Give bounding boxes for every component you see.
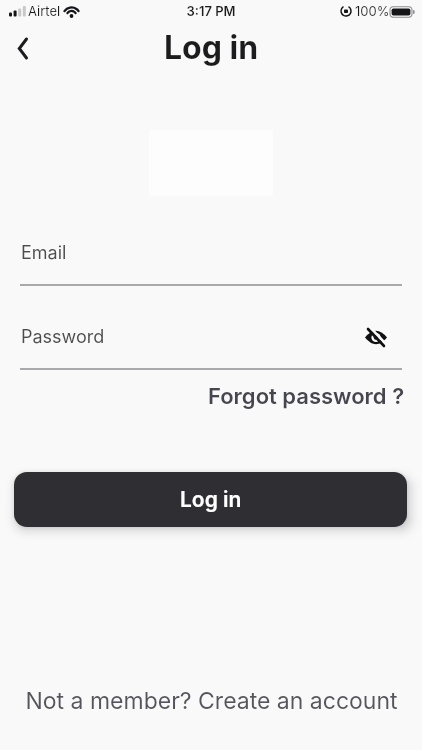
staticText: 100% bbox=[355, 3, 390, 19]
staticText: Log in bbox=[180, 487, 242, 512]
button[interactable]: Email bbox=[20, 238, 402, 286]
staticText: Password bbox=[21, 326, 105, 348]
staticText: Email bbox=[21, 242, 67, 264]
staticText: Log in bbox=[0, 28, 422, 67]
staticText: Forgot password ? bbox=[208, 383, 405, 410]
staticText: 3:17 PM bbox=[0, 3, 422, 19]
staticText: Airtel bbox=[28, 3, 61, 19]
button[interactable] bbox=[8, 32, 38, 64]
button[interactable]: Forgot password ? bbox=[208, 383, 405, 410]
button[interactable]: Not a member? Create an account bbox=[0, 687, 422, 715]
button[interactable]: Password bbox=[20, 322, 402, 370]
button[interactable] bbox=[363, 325, 390, 350]
button[interactable]: Log in bbox=[14, 472, 407, 527]
staticText: Not a member? Create an account bbox=[25, 687, 398, 715]
